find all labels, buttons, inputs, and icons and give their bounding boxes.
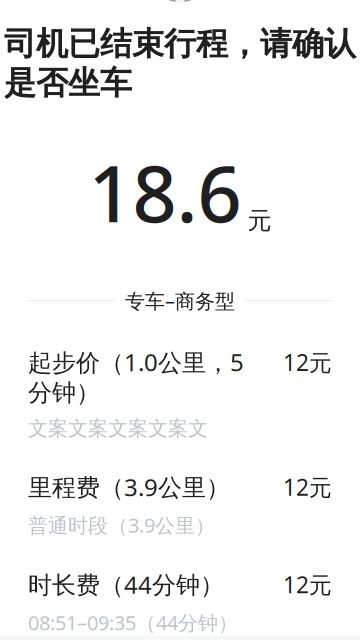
staticText: 12元 — [283, 347, 332, 377]
staticText: 文案文案文案文案文 — [28, 416, 208, 441]
staticText: 08:51–09:35（44分钟） — [28, 609, 238, 636]
staticText: 起步价（1.0公里，5分钟） — [28, 346, 244, 407]
staticText: 时长费（44分钟） — [28, 568, 224, 600]
staticText: 专车–商务型 — [125, 287, 235, 314]
staticText: 12元 — [283, 569, 332, 600]
staticText: 12元 — [283, 472, 332, 502]
staticText: 普通时段（3.9公里） — [28, 512, 215, 538]
staticText: 里程费（3.9公里） — [28, 471, 230, 503]
staticText: 18.6 — [88, 141, 241, 243]
staticText: 司机已结束行程，请确认是否坐车 — [4, 24, 356, 103]
staticText: 元 — [247, 206, 271, 235]
